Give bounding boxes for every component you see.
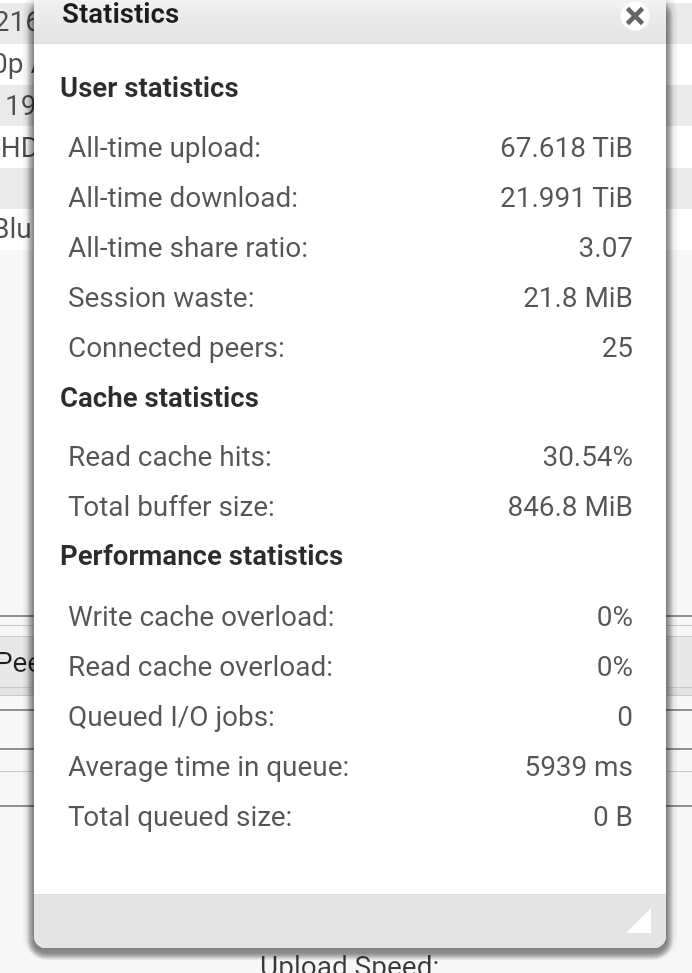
button[interactable]: All-time download: (34, 181, 666, 214)
staticText: Peers (0, 646, 67, 679)
staticText: Read cache overload: (68, 650, 333, 683)
button[interactable]: Read cache overload: (34, 650, 666, 683)
staticText: Session waste: (68, 281, 255, 314)
staticText: All-time download: (68, 181, 298, 214)
staticText: Read cache hits: (68, 440, 272, 473)
staticText: 0% (596, 600, 633, 633)
button[interactable]: Total queued size: (34, 800, 666, 833)
staticText: 67.618 TiB (500, 131, 633, 164)
staticText: 19 (5, 89, 37, 122)
button[interactable]: All-time upload: (34, 131, 666, 164)
button[interactable]: Connected peers: (34, 331, 666, 364)
button[interactable]: Read cache hits: (34, 440, 666, 473)
staticText: Performance statistics (60, 539, 344, 571)
button[interactable]: Write cache overload: (34, 600, 666, 633)
staticText: Upload Speed: (260, 950, 440, 973)
button[interactable]: Close (607, 0, 663, 44)
button[interactable]: Total buffer size: (34, 490, 666, 523)
staticText: All-time upload: (68, 131, 261, 164)
staticText: 0% (596, 650, 633, 683)
button[interactable]: Queued I/O jobs: (34, 700, 666, 733)
staticText: Total buffer size: (68, 490, 275, 523)
button[interactable]: Resize (626, 908, 651, 933)
staticText: All-time share ratio: (68, 231, 308, 264)
staticText: 21.991 TiB (500, 181, 633, 214)
button[interactable]: Session waste: (34, 281, 666, 314)
staticText: Connected peers: (68, 331, 285, 364)
staticText: Average time in queue: (68, 750, 350, 783)
staticText: Write cache overload: (68, 600, 335, 633)
staticText: 1216 (0, 5, 41, 38)
staticText: 846.8 MiB (507, 490, 633, 523)
staticText: User statistics (60, 71, 239, 103)
staticText: Queued I/O jobs: (68, 700, 275, 733)
button[interactable]: All-time share ratio: (34, 231, 666, 264)
staticText: Cache statistics (60, 381, 259, 413)
staticText: 0 B (593, 800, 633, 833)
staticText: 30.54% (542, 440, 633, 473)
button[interactable]: Average time in queue: (34, 750, 666, 783)
staticText: 5939 ms (524, 750, 633, 783)
staticText: 3.07 (578, 231, 633, 264)
staticText: 0p AAC (0, 47, 86, 80)
staticText: 25 (601, 331, 633, 364)
staticText: Statistics (62, 0, 180, 29)
staticText: Total queued size: (68, 800, 293, 833)
staticText: 0 (617, 700, 633, 733)
staticText: Blu (0, 212, 32, 245)
staticText: 21.8 MiB (523, 281, 633, 314)
staticText: -HD (0, 131, 40, 164)
